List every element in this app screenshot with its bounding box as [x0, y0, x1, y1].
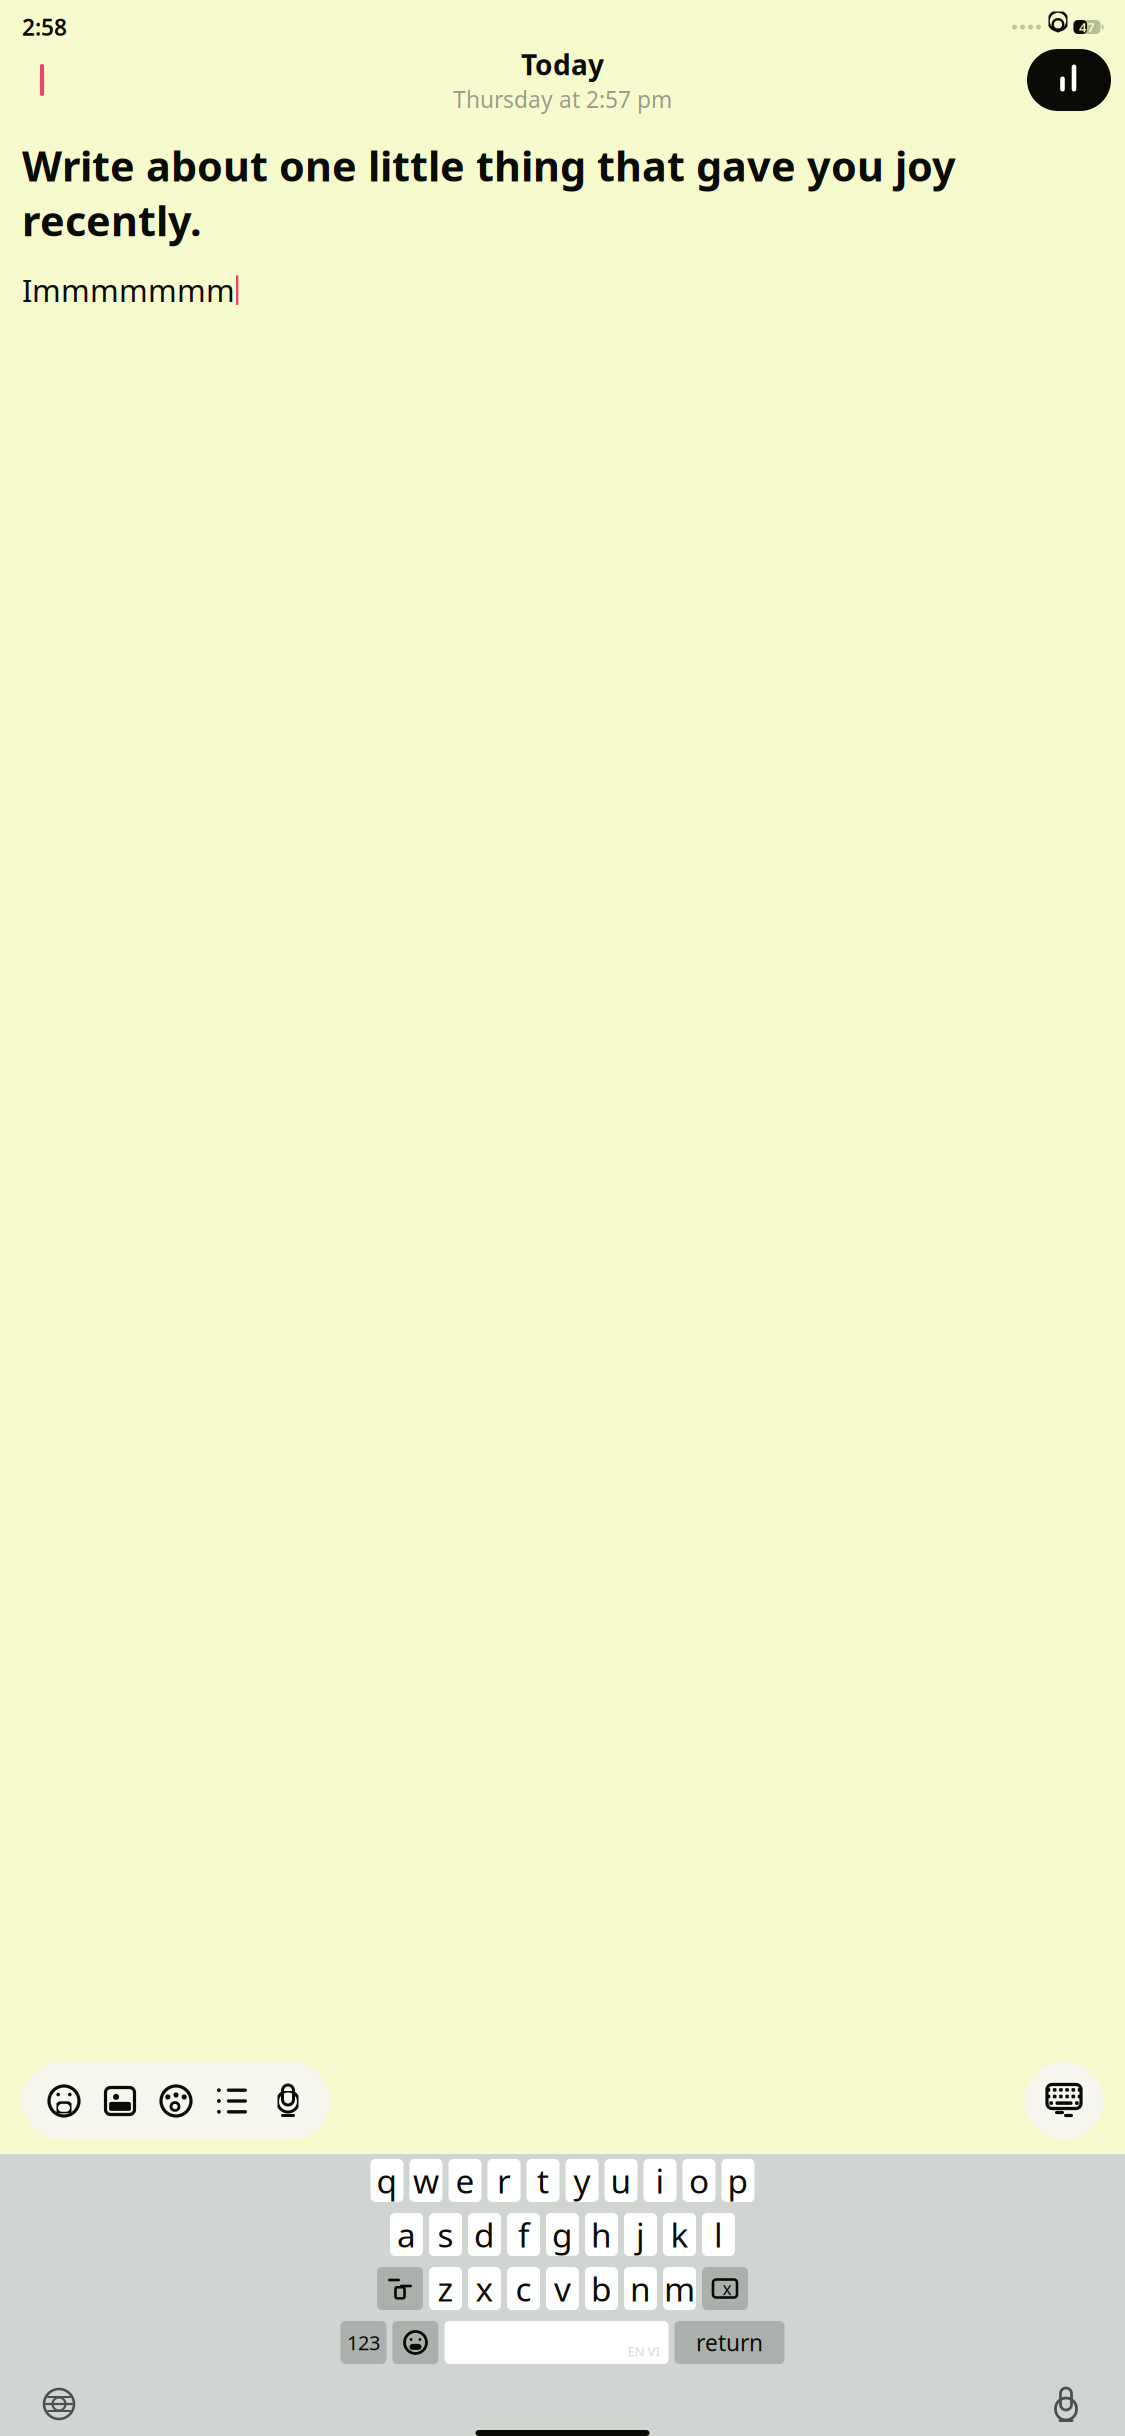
staticText: t	[537, 2158, 549, 2203]
button[interactable]: y	[565, 2159, 598, 2202]
button[interactable]: q	[370, 2159, 403, 2202]
button[interactable]: u	[604, 2159, 637, 2202]
staticText: x	[475, 2266, 493, 2311]
staticText: g	[552, 2212, 573, 2257]
staticText: x	[722, 2277, 731, 2300]
staticText: 123	[347, 2329, 380, 2356]
button[interactable]: s	[429, 2213, 462, 2256]
staticText: l	[714, 2212, 723, 2257]
button[interactable]: return	[674, 2321, 784, 2364]
staticText: Today	[521, 46, 604, 83]
button[interactable]: t	[526, 2159, 559, 2202]
button[interactable]: i	[643, 2159, 676, 2202]
button[interactable]: n	[624, 2267, 657, 2310]
staticText: k	[670, 2212, 688, 2257]
staticText: n	[630, 2266, 651, 2311]
button[interactable]: a	[390, 2213, 423, 2256]
button[interactable]: m	[663, 2267, 696, 2310]
staticText: q	[376, 2158, 397, 2203]
button[interactable]: Emoji	[36, 2073, 92, 2129]
button[interactable]: Back	[14, 52, 70, 108]
button[interactable]: Dictate	[1035, 2378, 1097, 2430]
button[interactable]: x	[468, 2267, 501, 2310]
button[interactable]: v	[546, 2267, 579, 2310]
staticText: Thursday at 2:57 pm	[453, 84, 672, 114]
staticText: c	[515, 2266, 531, 2311]
button[interactable]: c	[507, 2267, 540, 2310]
staticText: Immmmmmm	[22, 270, 235, 310]
staticText: 47	[1079, 18, 1095, 36]
button[interactable]: Emoji	[392, 2321, 438, 2364]
staticText: p	[727, 2158, 748, 2203]
staticText: h	[591, 2212, 612, 2257]
button[interactable]: Add photo	[92, 2073, 148, 2129]
button[interactable]: z	[429, 2267, 462, 2310]
staticText: v	[554, 2266, 571, 2311]
button[interactable]: b	[585, 2267, 618, 2310]
button[interactable]: d	[468, 2213, 501, 2256]
staticText: r	[497, 2158, 511, 2203]
button[interactable]: g	[546, 2213, 579, 2256]
staticText: y	[573, 2158, 590, 2203]
button[interactable]: Done	[1027, 49, 1111, 111]
button[interactable]: r	[487, 2159, 520, 2202]
staticText: 2:58	[22, 12, 67, 42]
button[interactable]: l	[702, 2213, 735, 2256]
staticText: i	[655, 2158, 664, 2203]
staticText: f	[518, 2212, 529, 2257]
button[interactable]: w	[409, 2159, 442, 2202]
staticText: w	[413, 2158, 439, 2203]
button[interactable]: Next keyboard	[28, 2378, 90, 2430]
staticText: s	[437, 2212, 453, 2257]
button[interactable]: Delete	[702, 2267, 748, 2310]
button[interactable]: k	[663, 2213, 696, 2256]
button[interactable]: p	[721, 2159, 754, 2202]
button[interactable]: 123	[340, 2321, 386, 2364]
button[interactable]: space	[444, 2321, 668, 2364]
staticText: e	[455, 2158, 474, 2203]
staticText: j	[636, 2212, 645, 2257]
staticText: b	[591, 2266, 612, 2311]
button[interactable]: e	[448, 2159, 481, 2202]
button[interactable]: Record audio	[260, 2073, 316, 2129]
button[interactable]: o	[682, 2159, 715, 2202]
staticText: Write about one little thing that gave y…	[22, 138, 956, 248]
button[interactable]: Hide keyboard	[1025, 2062, 1103, 2140]
staticText: z	[437, 2266, 453, 2311]
button[interactable]: h	[585, 2213, 618, 2256]
staticText: return	[696, 2327, 763, 2357]
staticText: EN VI	[627, 2342, 660, 2360]
staticText: m	[664, 2266, 695, 2311]
button[interactable]: f	[507, 2213, 540, 2256]
staticText: d	[474, 2212, 495, 2257]
button[interactable]: Colors	[148, 2073, 204, 2129]
staticText: u	[610, 2158, 631, 2203]
button[interactable]: Shift	[377, 2267, 423, 2310]
staticText: a	[397, 2212, 416, 2257]
button[interactable]: List	[204, 2073, 260, 2129]
staticText: o	[689, 2158, 709, 2203]
button[interactable]: j	[624, 2213, 657, 2256]
